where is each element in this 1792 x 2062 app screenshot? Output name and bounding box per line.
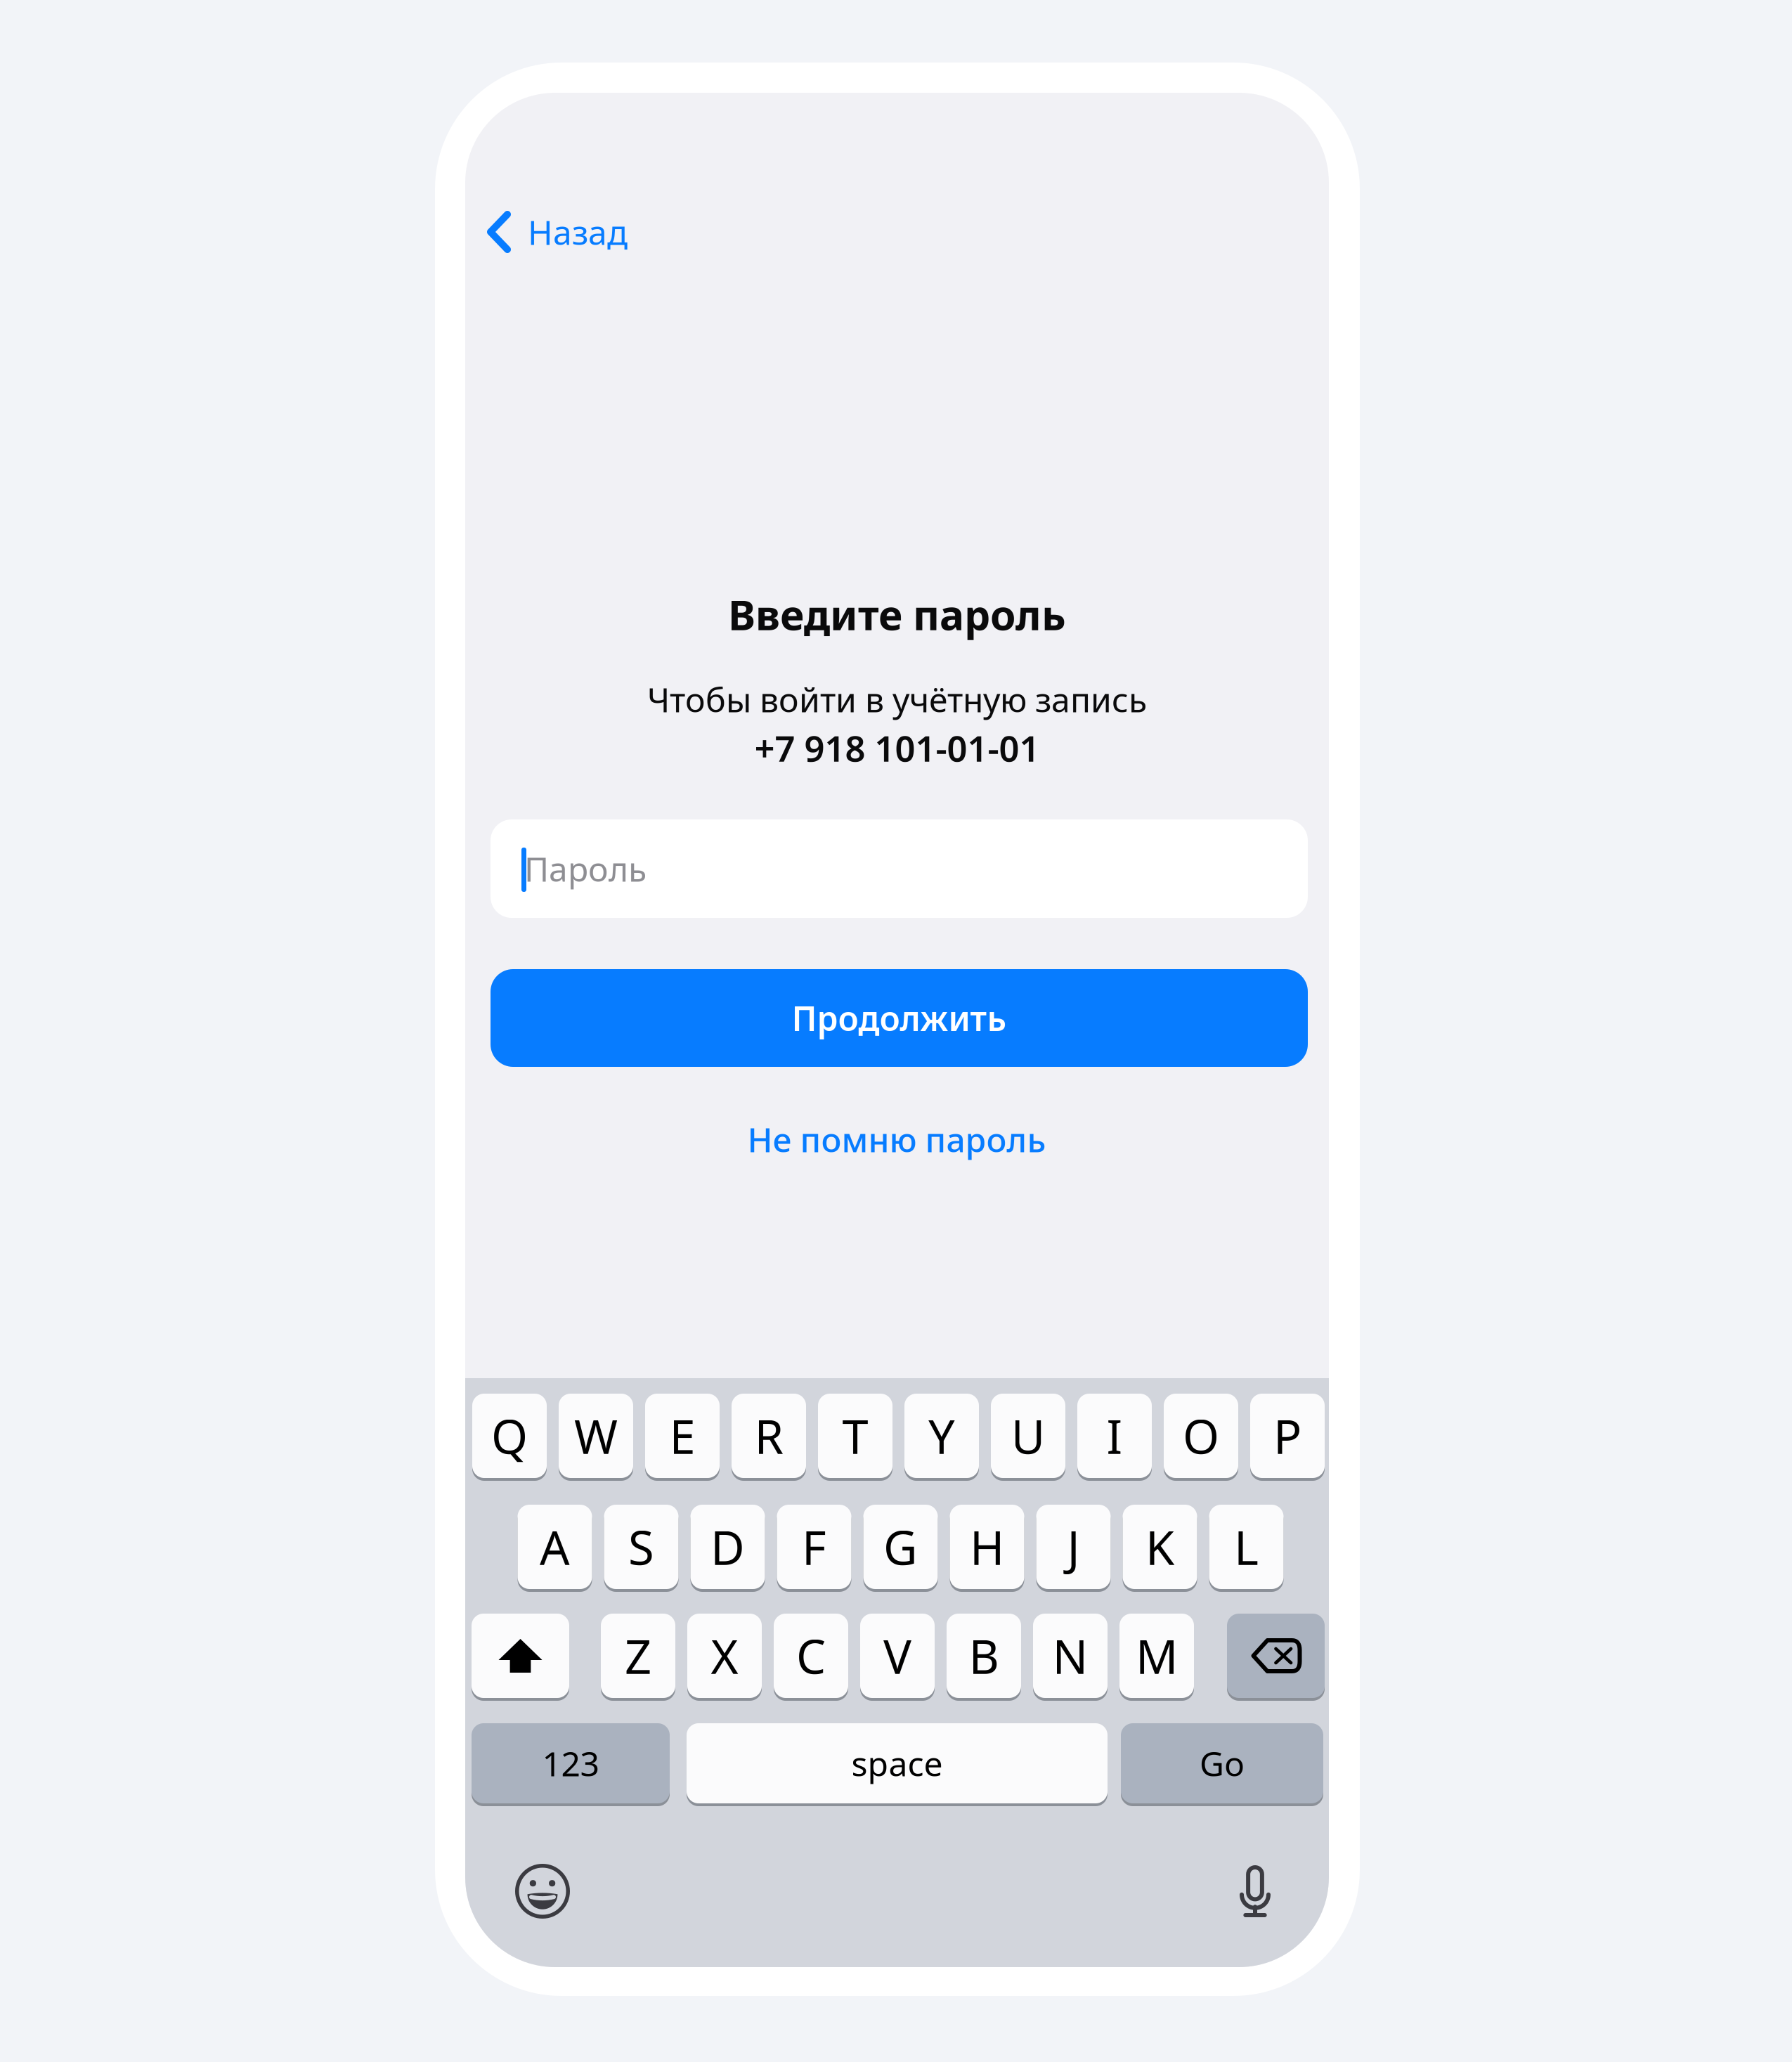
button[interactable]: H — [950, 1505, 1024, 1589]
staticText: T — [842, 1405, 868, 1467]
staticText: B — [969, 1625, 999, 1687]
staticText: V — [883, 1625, 911, 1687]
staticText: Z — [625, 1625, 651, 1687]
staticText: F — [802, 1516, 826, 1578]
button[interactable]: Shift — [472, 1614, 569, 1698]
button[interactable]: 123 — [472, 1723, 670, 1803]
staticText: O — [1183, 1405, 1219, 1467]
staticText: A — [540, 1516, 570, 1578]
button[interactable]: Не помню пароль — [746, 1111, 1048, 1167]
button[interactable]: Q — [472, 1394, 547, 1478]
staticText: X — [711, 1625, 738, 1687]
button[interactable]: E — [645, 1394, 720, 1478]
staticText: N — [1052, 1625, 1088, 1687]
button[interactable]: Y — [904, 1394, 979, 1478]
staticText: Q — [491, 1405, 528, 1467]
staticText: E — [669, 1405, 695, 1467]
staticText: Y — [928, 1405, 955, 1467]
button[interactable]: J — [1036, 1505, 1111, 1589]
staticText: +7 918 101-01-01 — [754, 724, 1040, 771]
button[interactable]: I — [1077, 1394, 1152, 1478]
staticText: J — [1067, 1516, 1080, 1578]
staticText: C — [796, 1625, 826, 1687]
button[interactable]: K — [1123, 1505, 1197, 1589]
button[interactable]: Emoji keyboard — [515, 1864, 570, 1919]
staticText: G — [883, 1516, 918, 1578]
button[interactable]: T — [818, 1394, 892, 1478]
button[interactable]: L — [1209, 1505, 1284, 1589]
button[interactable]: Dictation — [1240, 1865, 1271, 1917]
button[interactable]: space — [687, 1723, 1108, 1803]
staticText: U — [1011, 1405, 1045, 1467]
staticText: D — [710, 1516, 745, 1578]
button[interactable]: W — [559, 1394, 633, 1478]
button[interactable]: A — [518, 1505, 592, 1589]
button[interactable]: C — [774, 1614, 848, 1698]
staticText: H — [970, 1516, 1004, 1578]
button[interactable]: M — [1119, 1614, 1194, 1698]
button[interactable]: O — [1164, 1394, 1238, 1478]
button[interactable]: P — [1250, 1394, 1325, 1478]
button[interactable]: Назад — [487, 200, 628, 264]
staticText: M — [1136, 1625, 1178, 1687]
button[interactable]: R — [732, 1394, 806, 1478]
button[interactable]: X — [687, 1614, 762, 1698]
staticText: Введите пароль — [728, 587, 1066, 642]
button[interactable]: B — [947, 1614, 1021, 1698]
staticText: S — [628, 1516, 654, 1578]
staticText: 123 — [542, 1741, 599, 1786]
staticText: L — [1234, 1516, 1259, 1578]
staticText: Продолжить — [792, 996, 1007, 1040]
staticText: Не помню пароль — [747, 1117, 1046, 1162]
staticText: Назад — [528, 210, 628, 254]
button[interactable]: D — [690, 1505, 765, 1589]
staticText: I — [1106, 1405, 1123, 1467]
staticText: Go — [1200, 1741, 1245, 1786]
staticText: P — [1273, 1405, 1301, 1467]
button[interactable]: F — [777, 1505, 851, 1589]
staticText: Пароль — [524, 846, 647, 891]
button[interactable]: Продолжить — [491, 969, 1308, 1067]
staticText: R — [754, 1405, 783, 1467]
button[interactable]: Z — [601, 1614, 675, 1698]
button[interactable]: U — [991, 1394, 1065, 1478]
staticText: K — [1145, 1516, 1174, 1578]
button[interactable]: G — [863, 1505, 938, 1589]
button[interactable]: N — [1033, 1614, 1108, 1698]
button[interactable]: Delete — [1227, 1614, 1325, 1698]
button[interactable]: S — [604, 1505, 679, 1589]
button[interactable]: V — [860, 1614, 935, 1698]
staticText: W — [574, 1405, 618, 1467]
button[interactable]: Go — [1121, 1723, 1323, 1803]
staticText: Чтобы войти в учётную запись — [647, 677, 1147, 722]
staticText: space — [851, 1741, 943, 1786]
